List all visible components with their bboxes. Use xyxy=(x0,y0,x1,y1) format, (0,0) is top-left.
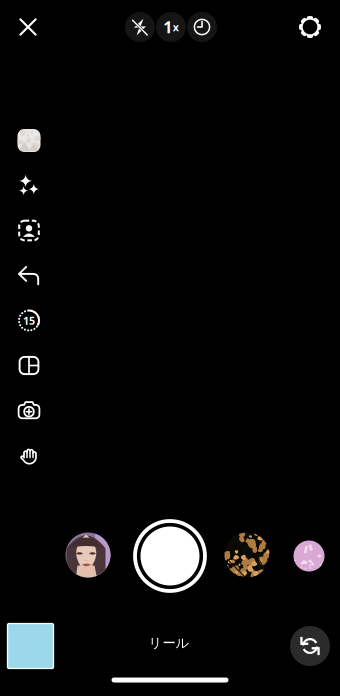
button[interactable]: Flip camera xyxy=(290,626,330,666)
button[interactable]: Gallery xyxy=(7,623,53,668)
button[interactable]: Green screen xyxy=(7,208,51,253)
button[interactable]: Effect, portrait xyxy=(65,532,110,577)
button[interactable]: Flash off xyxy=(124,11,155,42)
staticText: x xyxy=(173,20,179,34)
button[interactable]: Audio xyxy=(7,118,51,163)
button[interactable]: Effects xyxy=(7,163,51,208)
staticText: リール xyxy=(148,635,189,651)
button[interactable]: Camera settings xyxy=(288,5,332,49)
button[interactable]: Zoom 1x xyxy=(155,11,186,42)
button[interactable]: Dual camera xyxy=(7,388,51,433)
button[interactable]: Effect, flowers xyxy=(224,532,269,577)
button[interactable]: Effect, glitter xyxy=(293,540,324,571)
button[interactable]: Record xyxy=(135,521,205,591)
button[interactable]: Close xyxy=(6,5,50,49)
button[interactable]: Undo xyxy=(7,253,51,298)
staticText: 1 xyxy=(163,16,172,38)
button[interactable]: Layout xyxy=(7,343,51,388)
button[interactable]: リール xyxy=(129,626,209,660)
button[interactable]: Timer xyxy=(186,11,217,42)
button[interactable]: Gesture control xyxy=(7,433,51,478)
button[interactable]: Clip length 15 seconds xyxy=(7,298,51,343)
staticText: 15 xyxy=(23,313,35,328)
